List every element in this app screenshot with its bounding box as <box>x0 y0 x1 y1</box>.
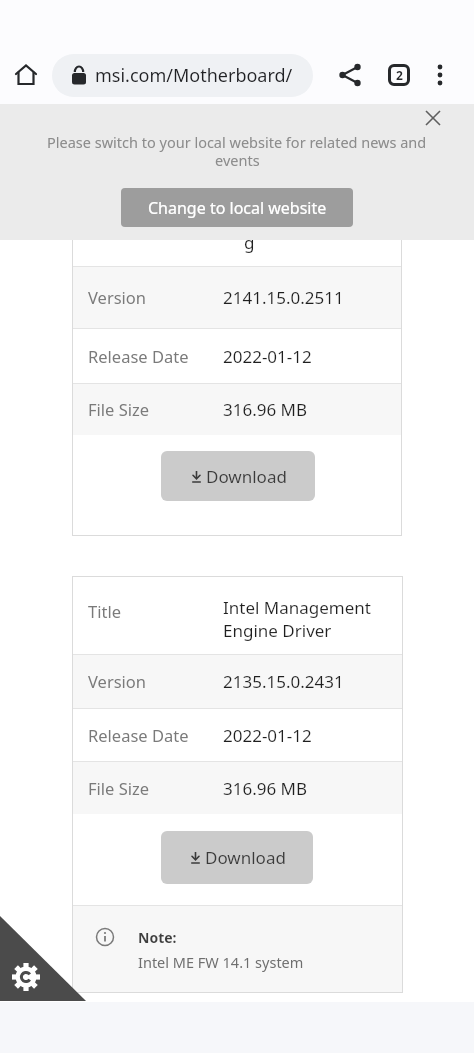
staticText: Intel ME FW 14.1 system <box>138 952 304 972</box>
button[interactable] <box>336 61 364 89</box>
staticText: msi.com/Motherboard/ <box>95 63 293 88</box>
staticText: 2135.15.0.2431 <box>223 670 344 693</box>
button[interactable]: msi.com/Motherboard/ <box>52 54 313 97</box>
staticText: Engine Driver <box>223 619 332 642</box>
staticText: Intel Management <box>223 596 371 619</box>
staticText: Please switch to your local website for … <box>47 132 427 152</box>
staticText: File Size <box>88 398 150 420</box>
staticText: 316.96 MB <box>223 777 308 800</box>
button[interactable] <box>0 915 87 1002</box>
staticText: 2022-01-12 <box>223 724 312 747</box>
staticText: File Size <box>88 777 150 799</box>
staticText: Version <box>88 670 147 692</box>
button[interactable] <box>429 62 451 88</box>
staticText: 316.96 MB <box>223 398 308 421</box>
staticText: Release Date <box>88 724 189 746</box>
staticText: Download <box>206 465 287 488</box>
button[interactable] <box>13 62 39 88</box>
staticText: Change to local website <box>148 197 327 219</box>
staticText: Download <box>205 846 286 869</box>
staticText: 2022-01-12 <box>223 345 312 368</box>
button[interactable]: 2 <box>388 64 410 86</box>
staticText: 2141.15.0.2511 <box>223 286 344 309</box>
button[interactable] <box>420 105 446 131</box>
staticText: 2 <box>396 67 403 83</box>
staticText: Note: <box>138 928 177 947</box>
button[interactable]: Change to local website <box>121 188 353 227</box>
staticText: Release Date <box>88 345 189 367</box>
staticText: Title <box>88 600 121 622</box>
staticText: g <box>244 231 255 254</box>
staticText: events <box>215 150 260 170</box>
button[interactable]: Download <box>161 451 315 501</box>
staticText: Version <box>88 286 147 308</box>
button[interactable]: Download <box>161 831 313 884</box>
